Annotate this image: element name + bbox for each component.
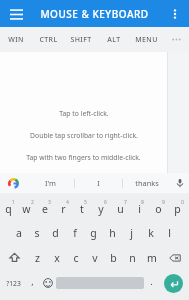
staticText: 2 xyxy=(31,199,34,206)
staticText: c xyxy=(73,251,79,265)
staticText: 8 xyxy=(141,199,144,206)
button[interactable]: SHIFT xyxy=(64,27,97,52)
staticText: p xyxy=(174,202,181,216)
staticText: n xyxy=(129,251,136,265)
staticText: I xyxy=(97,178,100,188)
staticText: SHIFT xyxy=(70,35,92,45)
button[interactable]: p xyxy=(169,195,188,220)
staticText: r xyxy=(61,202,66,216)
staticText: 9 xyxy=(162,199,165,206)
button[interactable]: u xyxy=(112,195,131,220)
button[interactable]: m xyxy=(142,245,161,270)
staticText: t xyxy=(80,202,84,216)
button[interactable]: Enter xyxy=(159,270,187,296)
staticText: f xyxy=(73,226,77,240)
button[interactable]: t xyxy=(74,195,93,220)
button[interactable]: i xyxy=(131,195,150,220)
button[interactable]: l xyxy=(160,220,179,245)
staticText: i xyxy=(138,202,141,216)
button[interactable]: WIN xyxy=(0,27,32,52)
staticText: 1 xyxy=(12,199,15,206)
staticText: u xyxy=(117,202,124,216)
button[interactable]: Emoji xyxy=(40,270,56,296)
button[interactable]: g xyxy=(84,220,103,245)
staticText: o xyxy=(155,202,162,216)
staticText: s xyxy=(34,226,40,240)
button[interactable]: Google xyxy=(0,173,26,193)
button[interactable]: s xyxy=(28,220,46,245)
staticText: k xyxy=(148,226,154,240)
button[interactable]: x xyxy=(47,245,66,270)
button[interactable]: d xyxy=(46,220,65,245)
staticText: , xyxy=(31,275,34,287)
staticText: CTRL xyxy=(39,35,58,45)
button[interactable]: . xyxy=(144,270,159,296)
button[interactable]: Tap to left-click. xyxy=(0,52,167,173)
staticText: m xyxy=(147,251,157,265)
button[interactable]: z xyxy=(28,245,47,270)
button[interactable]: b xyxy=(104,245,123,270)
staticText: MOUSE & KEYBOARD xyxy=(40,7,149,21)
staticText: thanks xyxy=(135,178,159,188)
button[interactable]: I xyxy=(75,173,122,193)
staticText: b xyxy=(110,251,117,265)
button[interactable]: More tabs xyxy=(163,27,189,52)
staticText: h xyxy=(109,226,116,240)
button[interactable]: ?123 xyxy=(2,270,25,296)
button[interactable]: r xyxy=(55,195,74,220)
button[interactable]: q xyxy=(1,195,19,220)
staticText: y xyxy=(98,202,104,216)
button[interactable]: e xyxy=(37,195,55,220)
button[interactable]: I'm xyxy=(26,173,74,193)
staticText: x xyxy=(54,251,60,265)
staticText: 3 xyxy=(48,199,51,206)
staticText: j xyxy=(130,226,133,240)
button[interactable]: Open navigation drawer xyxy=(5,3,27,25)
staticText: 6 xyxy=(104,199,107,206)
button[interactable]: k xyxy=(141,220,160,245)
button[interactable]: CTRL xyxy=(32,27,64,52)
staticText: ?123 xyxy=(6,279,21,288)
staticText: Double tap scrollbar to right-click. xyxy=(30,131,138,140)
button[interactable]: MENU xyxy=(130,27,163,52)
staticText: ALT xyxy=(107,35,121,45)
staticText: g xyxy=(90,226,97,240)
button[interactable]: c xyxy=(66,245,85,270)
staticText: 5 xyxy=(84,199,87,206)
staticText: l xyxy=(168,226,171,240)
button[interactable]: f xyxy=(65,220,84,245)
staticText: a xyxy=(16,226,22,240)
button[interactable]: w xyxy=(19,195,37,220)
staticText: I'm xyxy=(45,178,56,188)
staticText: w xyxy=(22,202,31,216)
staticText: e xyxy=(42,202,48,216)
staticText: q xyxy=(5,202,12,216)
staticText: Tap with two fingers to middle-click. xyxy=(26,153,141,162)
button[interactable]: v xyxy=(85,245,104,270)
staticText: Tap to left-click. xyxy=(59,109,109,118)
button[interactable]: thanks xyxy=(123,173,170,193)
staticText: 4 xyxy=(66,199,69,206)
staticText: v xyxy=(92,251,98,265)
button[interactable]: n xyxy=(123,245,142,270)
button[interactable]: y xyxy=(93,195,112,220)
staticText: z xyxy=(35,251,40,265)
staticText: 7 xyxy=(124,199,127,206)
button[interactable]: Backspace xyxy=(161,245,188,270)
button[interactable]: Shift xyxy=(1,245,28,270)
staticText: . xyxy=(150,275,153,287)
staticText: d xyxy=(52,226,59,240)
button[interactable]: Voice input xyxy=(170,173,189,193)
button[interactable]: o xyxy=(150,195,169,220)
button[interactable]: h xyxy=(103,220,122,245)
button[interactable]: More options xyxy=(165,4,185,24)
button[interactable]: j xyxy=(122,220,141,245)
button[interactable]: , xyxy=(25,270,40,296)
button[interactable]: ALT xyxy=(97,27,130,52)
staticText: WIN xyxy=(8,35,24,45)
staticText: MENU xyxy=(135,35,158,45)
button[interactable]: a xyxy=(10,220,28,245)
staticText: 0 xyxy=(181,199,184,206)
